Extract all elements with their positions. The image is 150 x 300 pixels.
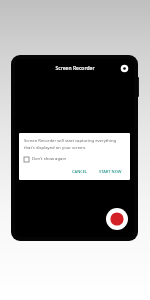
staticText: Screen Recorder xyxy=(55,65,95,72)
button[interactable]: Don't show again xyxy=(24,155,67,163)
button[interactable]: Settings xyxy=(118,62,130,74)
staticText: CANCEL xyxy=(72,169,88,174)
staticText: Screen Recorder will start capturing eve… xyxy=(24,138,125,150)
button[interactable]: START NOW xyxy=(96,168,125,175)
button[interactable]: Start recording xyxy=(106,208,128,230)
staticText: Don't show again xyxy=(32,156,67,162)
staticText: START NOW xyxy=(99,169,122,174)
button[interactable]: CANCEL xyxy=(69,168,91,175)
